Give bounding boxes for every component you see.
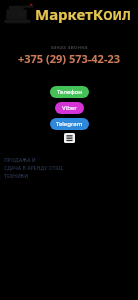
staticText: ТЕХНИКИ bbox=[4, 173, 29, 180]
staticText: Viber bbox=[62, 104, 77, 112]
staticText: СДАЧА В АРЕНДУ СПЕЦ bbox=[4, 165, 63, 172]
staticText: ПРОДАЖА И bbox=[4, 157, 36, 164]
button[interactable]: Viber bbox=[55, 102, 84, 114]
button[interactable]: заказ звонка bbox=[0, 43, 138, 51]
button[interactable]: Логотип МаркетКоил bbox=[3, 3, 36, 24]
staticText: Telegram bbox=[56, 120, 83, 128]
staticText: МаркетКОИЛ bbox=[35, 4, 131, 24]
button[interactable]: Телефон bbox=[50, 86, 89, 98]
button[interactable]: МаркетКОИЛ bbox=[35, 4, 131, 24]
button[interactable]: +375 (29) 573-42-23 bbox=[0, 51, 138, 66]
button[interactable]: Telegram bbox=[50, 118, 89, 130]
staticText: Телефон bbox=[57, 88, 82, 96]
button[interactable]: Меню bbox=[64, 133, 75, 143]
